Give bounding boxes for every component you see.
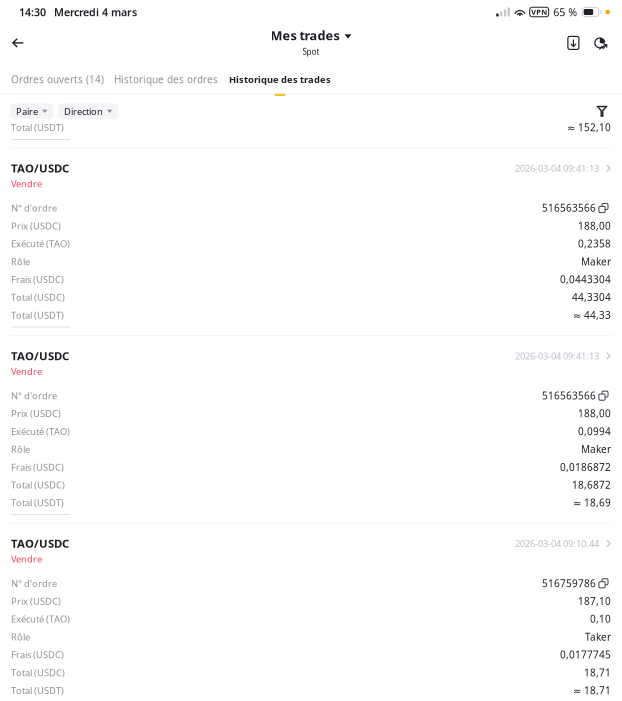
staticText: 187,10 bbox=[578, 594, 611, 608]
staticText: Rôle bbox=[11, 443, 30, 455]
staticText: Maker bbox=[581, 442, 611, 456]
staticText: 2026-03-04 09:10:44 bbox=[515, 537, 599, 550]
staticText: Rôle bbox=[11, 630, 30, 643]
staticText: Mercredi 4 mars bbox=[54, 5, 137, 19]
staticText: Exécuté (TAO) bbox=[11, 237, 70, 250]
staticText: Frais (USDC) bbox=[11, 461, 64, 473]
staticText: TAO/USDC bbox=[11, 536, 69, 551]
staticText: 516759786 bbox=[542, 576, 596, 590]
staticText: Historique des ordres bbox=[114, 72, 218, 86]
staticText: Total (USDC) bbox=[11, 291, 65, 304]
staticText: Maker bbox=[581, 255, 611, 268]
staticText: Vendre bbox=[11, 177, 42, 190]
staticText: Total (USDC) bbox=[11, 666, 65, 679]
staticText: Mes trades bbox=[270, 27, 339, 44]
staticText: N° d'ordre bbox=[11, 202, 57, 214]
staticText: Spot bbox=[302, 46, 319, 57]
staticText: Frais (USDC) bbox=[11, 648, 64, 661]
staticText: 44,3304 bbox=[572, 290, 611, 304]
button[interactable]: TAO/USDC bbox=[0, 523, 622, 574]
staticText: Exécuté (TAO) bbox=[11, 425, 70, 438]
staticText: 516563566 bbox=[542, 201, 596, 215]
staticText: Total (USDT) bbox=[11, 309, 64, 321]
staticText: 0,2358 bbox=[578, 237, 611, 250]
staticText: 0,0443304 bbox=[560, 273, 611, 286]
staticText: Prix (USDC) bbox=[11, 595, 61, 607]
staticText: 18,71 bbox=[584, 666, 611, 679]
button[interactable]: Copier le numéro d'ordre bbox=[596, 201, 611, 215]
staticText: TAO/USDC bbox=[11, 160, 69, 176]
staticText: TAO/USDC bbox=[11, 348, 69, 363]
staticText: 516563566 bbox=[542, 389, 596, 402]
button[interactable]: Paire bbox=[10, 103, 53, 119]
staticText: Total (USDT) bbox=[11, 684, 64, 697]
staticText: 0,10 bbox=[590, 612, 611, 626]
staticText: ≈ 18,69 bbox=[573, 496, 611, 509]
staticText: Vendre bbox=[11, 553, 42, 565]
staticText: Vendre bbox=[11, 365, 42, 378]
button[interactable]: TAO/USDC bbox=[0, 148, 622, 199]
button[interactable]: Ordres ouverts (14) bbox=[0, 69, 114, 90]
staticText: Prix (USDC) bbox=[11, 219, 61, 232]
button[interactable]: Retour bbox=[3, 28, 33, 58]
staticText: 0,0186872 bbox=[560, 460, 611, 474]
button[interactable]: Historique des ordres bbox=[114, 69, 229, 90]
staticText: Ordres ouverts (14) bbox=[11, 72, 104, 86]
button[interactable]: Copier le numéro d'ordre bbox=[596, 389, 611, 403]
staticText: ≈ 18,71 bbox=[573, 684, 611, 697]
button[interactable]: TAO/USDC bbox=[0, 336, 622, 387]
staticText: Rôle bbox=[11, 255, 30, 268]
staticText: 188,00 bbox=[578, 407, 611, 420]
staticText: 0,0994 bbox=[578, 424, 611, 438]
staticText: Prix (USDC) bbox=[11, 407, 61, 420]
staticText: 2026-03-04 09:41:13 bbox=[515, 162, 599, 174]
button[interactable]: Mes trades bbox=[262, 28, 359, 58]
staticText: Total (USDC) bbox=[11, 478, 65, 491]
staticText: ≈ 152,10 bbox=[567, 121, 611, 134]
staticText: N° d'ordre bbox=[11, 577, 57, 590]
staticText: Total (USDT) bbox=[11, 496, 64, 509]
staticText: Total (USDT) bbox=[11, 121, 64, 134]
staticText: VPN bbox=[531, 7, 547, 17]
button[interactable]: Filtrer bbox=[591, 100, 613, 122]
staticText: 188,00 bbox=[578, 219, 611, 233]
staticText: Taker bbox=[585, 630, 611, 644]
button[interactable]: Copier le numéro d'ordre bbox=[596, 576, 611, 590]
staticText: Paire bbox=[16, 105, 38, 118]
button[interactable]: Statistiques bbox=[587, 28, 613, 58]
staticText: Historique des trades bbox=[229, 73, 331, 86]
staticText: Direction bbox=[64, 105, 103, 118]
staticText: N° d'ordre bbox=[11, 389, 57, 402]
staticText: 0,0177745 bbox=[560, 648, 611, 661]
button[interactable]: Direction bbox=[58, 103, 118, 119]
staticText: Frais (USDC) bbox=[11, 273, 64, 286]
button[interactable]: Exporter bbox=[560, 28, 587, 58]
staticText: ≈ 44,33 bbox=[573, 308, 611, 322]
staticText: 2026-03-04 09:41:13 bbox=[515, 349, 599, 362]
button[interactable]: Historique des trades bbox=[229, 69, 331, 90]
staticText: 18,6872 bbox=[572, 478, 611, 492]
staticText: Exécuté (TAO) bbox=[11, 613, 70, 625]
staticText: 65 % bbox=[553, 5, 577, 19]
staticText: 14:30 bbox=[19, 5, 46, 19]
